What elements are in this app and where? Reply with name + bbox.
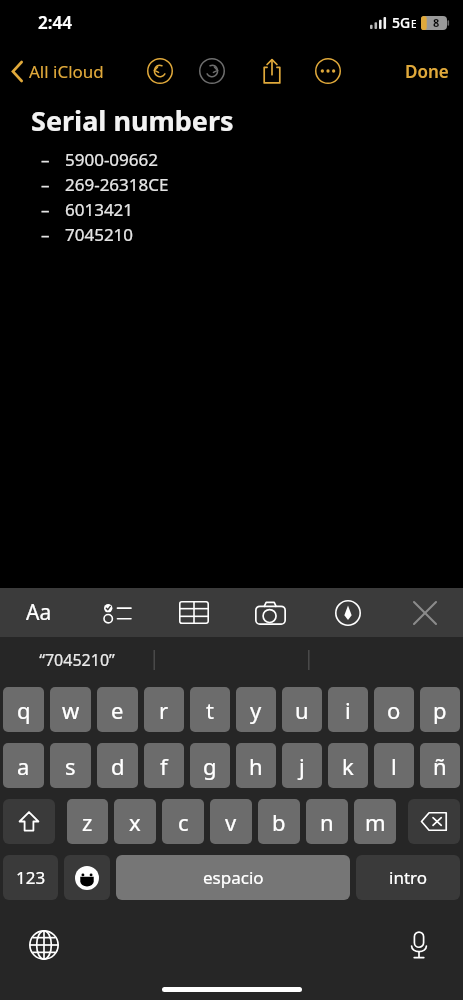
button[interactable]: Shift <box>3 799 55 844</box>
button[interactable]: x <box>114 799 156 844</box>
button[interactable]: e <box>97 687 138 732</box>
staticText: Done <box>405 60 449 83</box>
staticText: y <box>250 695 262 725</box>
staticText: Aa <box>26 598 52 627</box>
button[interactable]: Emoji <box>64 855 110 900</box>
button[interactable]: Change keyboard language <box>22 923 66 967</box>
staticText: espacio <box>203 866 264 889</box>
staticText: 7045210 <box>65 223 134 246</box>
button[interactable]: Undo <box>145 56 175 86</box>
button[interactable]: f <box>144 743 184 788</box>
button[interactable]: “7045210” <box>0 637 154 682</box>
staticText: 8 <box>433 15 440 30</box>
staticText: a <box>17 751 30 781</box>
staticText: k <box>342 751 354 781</box>
button[interactable]: Camera <box>232 588 309 637</box>
button[interactable]: y <box>236 687 276 732</box>
staticText: v <box>225 807 237 837</box>
button[interactable]: Backspace <box>408 799 460 844</box>
staticText: s <box>65 751 76 781</box>
staticText: p <box>433 695 447 725</box>
button[interactable]: n <box>306 799 348 844</box>
button[interactable]: All iCloud <box>0 54 112 89</box>
button[interactable]: intro <box>356 855 460 900</box>
button[interactable]: Done <box>391 54 463 89</box>
button[interactable]: p <box>420 687 460 732</box>
button[interactable]: z <box>67 799 108 844</box>
staticText: – <box>41 173 65 196</box>
staticText: n <box>320 807 334 837</box>
staticText: 2:44 <box>38 11 72 34</box>
staticText: w <box>62 695 80 725</box>
button[interactable]: Dictate <box>397 923 441 967</box>
staticText: r <box>159 695 169 725</box>
staticText: e <box>111 695 124 725</box>
button[interactable]: v <box>210 799 252 844</box>
staticText: c <box>178 807 189 837</box>
staticText: d <box>111 751 125 781</box>
staticText: 123 <box>16 866 46 889</box>
button[interactable]: m <box>354 799 396 844</box>
button[interactable]: a <box>3 743 44 788</box>
staticText: – <box>41 223 65 246</box>
button[interactable]: Table <box>155 588 232 637</box>
button[interactable]: Checklist <box>78 588 155 637</box>
button[interactable]: r <box>144 687 184 732</box>
button[interactable]: Text formatting <box>0 588 78 637</box>
button[interactable]: Redo <box>197 56 227 86</box>
staticText: 5G <box>392 13 411 32</box>
button[interactable]: s <box>50 743 91 788</box>
staticText: f <box>160 751 168 781</box>
staticText: E <box>411 17 417 31</box>
button[interactable]: h <box>236 743 276 788</box>
button[interactable]: Close keyboard <box>386 588 463 637</box>
button[interactable]: u <box>282 687 322 732</box>
button[interactable]: d <box>97 743 138 788</box>
button[interactable]: j <box>282 743 322 788</box>
staticText: g <box>203 751 217 781</box>
staticText: h <box>249 751 263 781</box>
button[interactable]: w <box>50 687 91 732</box>
button[interactable]: More options <box>313 56 343 86</box>
staticText: b <box>272 807 286 837</box>
staticText: u <box>295 695 309 725</box>
staticText: o <box>387 695 401 725</box>
staticText: – <box>41 198 65 221</box>
staticText: intro <box>389 866 427 889</box>
staticText: j <box>299 751 305 781</box>
button[interactable]: l <box>374 743 414 788</box>
button[interactable]: b <box>258 799 300 844</box>
staticText: 5900-09662 <box>65 148 158 171</box>
button[interactable]: 123 <box>3 855 58 900</box>
button[interactable]: Share <box>257 56 287 86</box>
staticText: i <box>345 695 351 725</box>
staticText: q <box>17 695 31 725</box>
staticText: t <box>206 695 214 725</box>
button[interactable]: Markup <box>309 588 386 637</box>
button[interactable]: t <box>190 687 230 732</box>
staticText: x <box>129 807 141 837</box>
button[interactable]: espacio <box>116 855 350 900</box>
staticText: l <box>391 751 397 781</box>
button[interactable]: i <box>328 687 368 732</box>
button[interactable]: q <box>3 687 44 732</box>
button[interactable]: k <box>328 743 368 788</box>
button[interactable]: o <box>374 687 414 732</box>
staticText: All iCloud <box>29 60 104 83</box>
staticText: “7045210” <box>39 649 115 671</box>
staticText: m <box>365 807 386 837</box>
staticText: ñ <box>433 751 447 781</box>
staticText: z <box>82 807 93 837</box>
button[interactable]: g <box>190 743 230 788</box>
staticText: 6013421 <box>65 198 134 221</box>
staticText: – <box>41 148 65 171</box>
button[interactable]: ñ <box>420 743 460 788</box>
staticText: Serial numbers <box>31 102 234 139</box>
button[interactable]: c <box>162 799 204 844</box>
staticText: 269-26318CE <box>65 173 169 196</box>
